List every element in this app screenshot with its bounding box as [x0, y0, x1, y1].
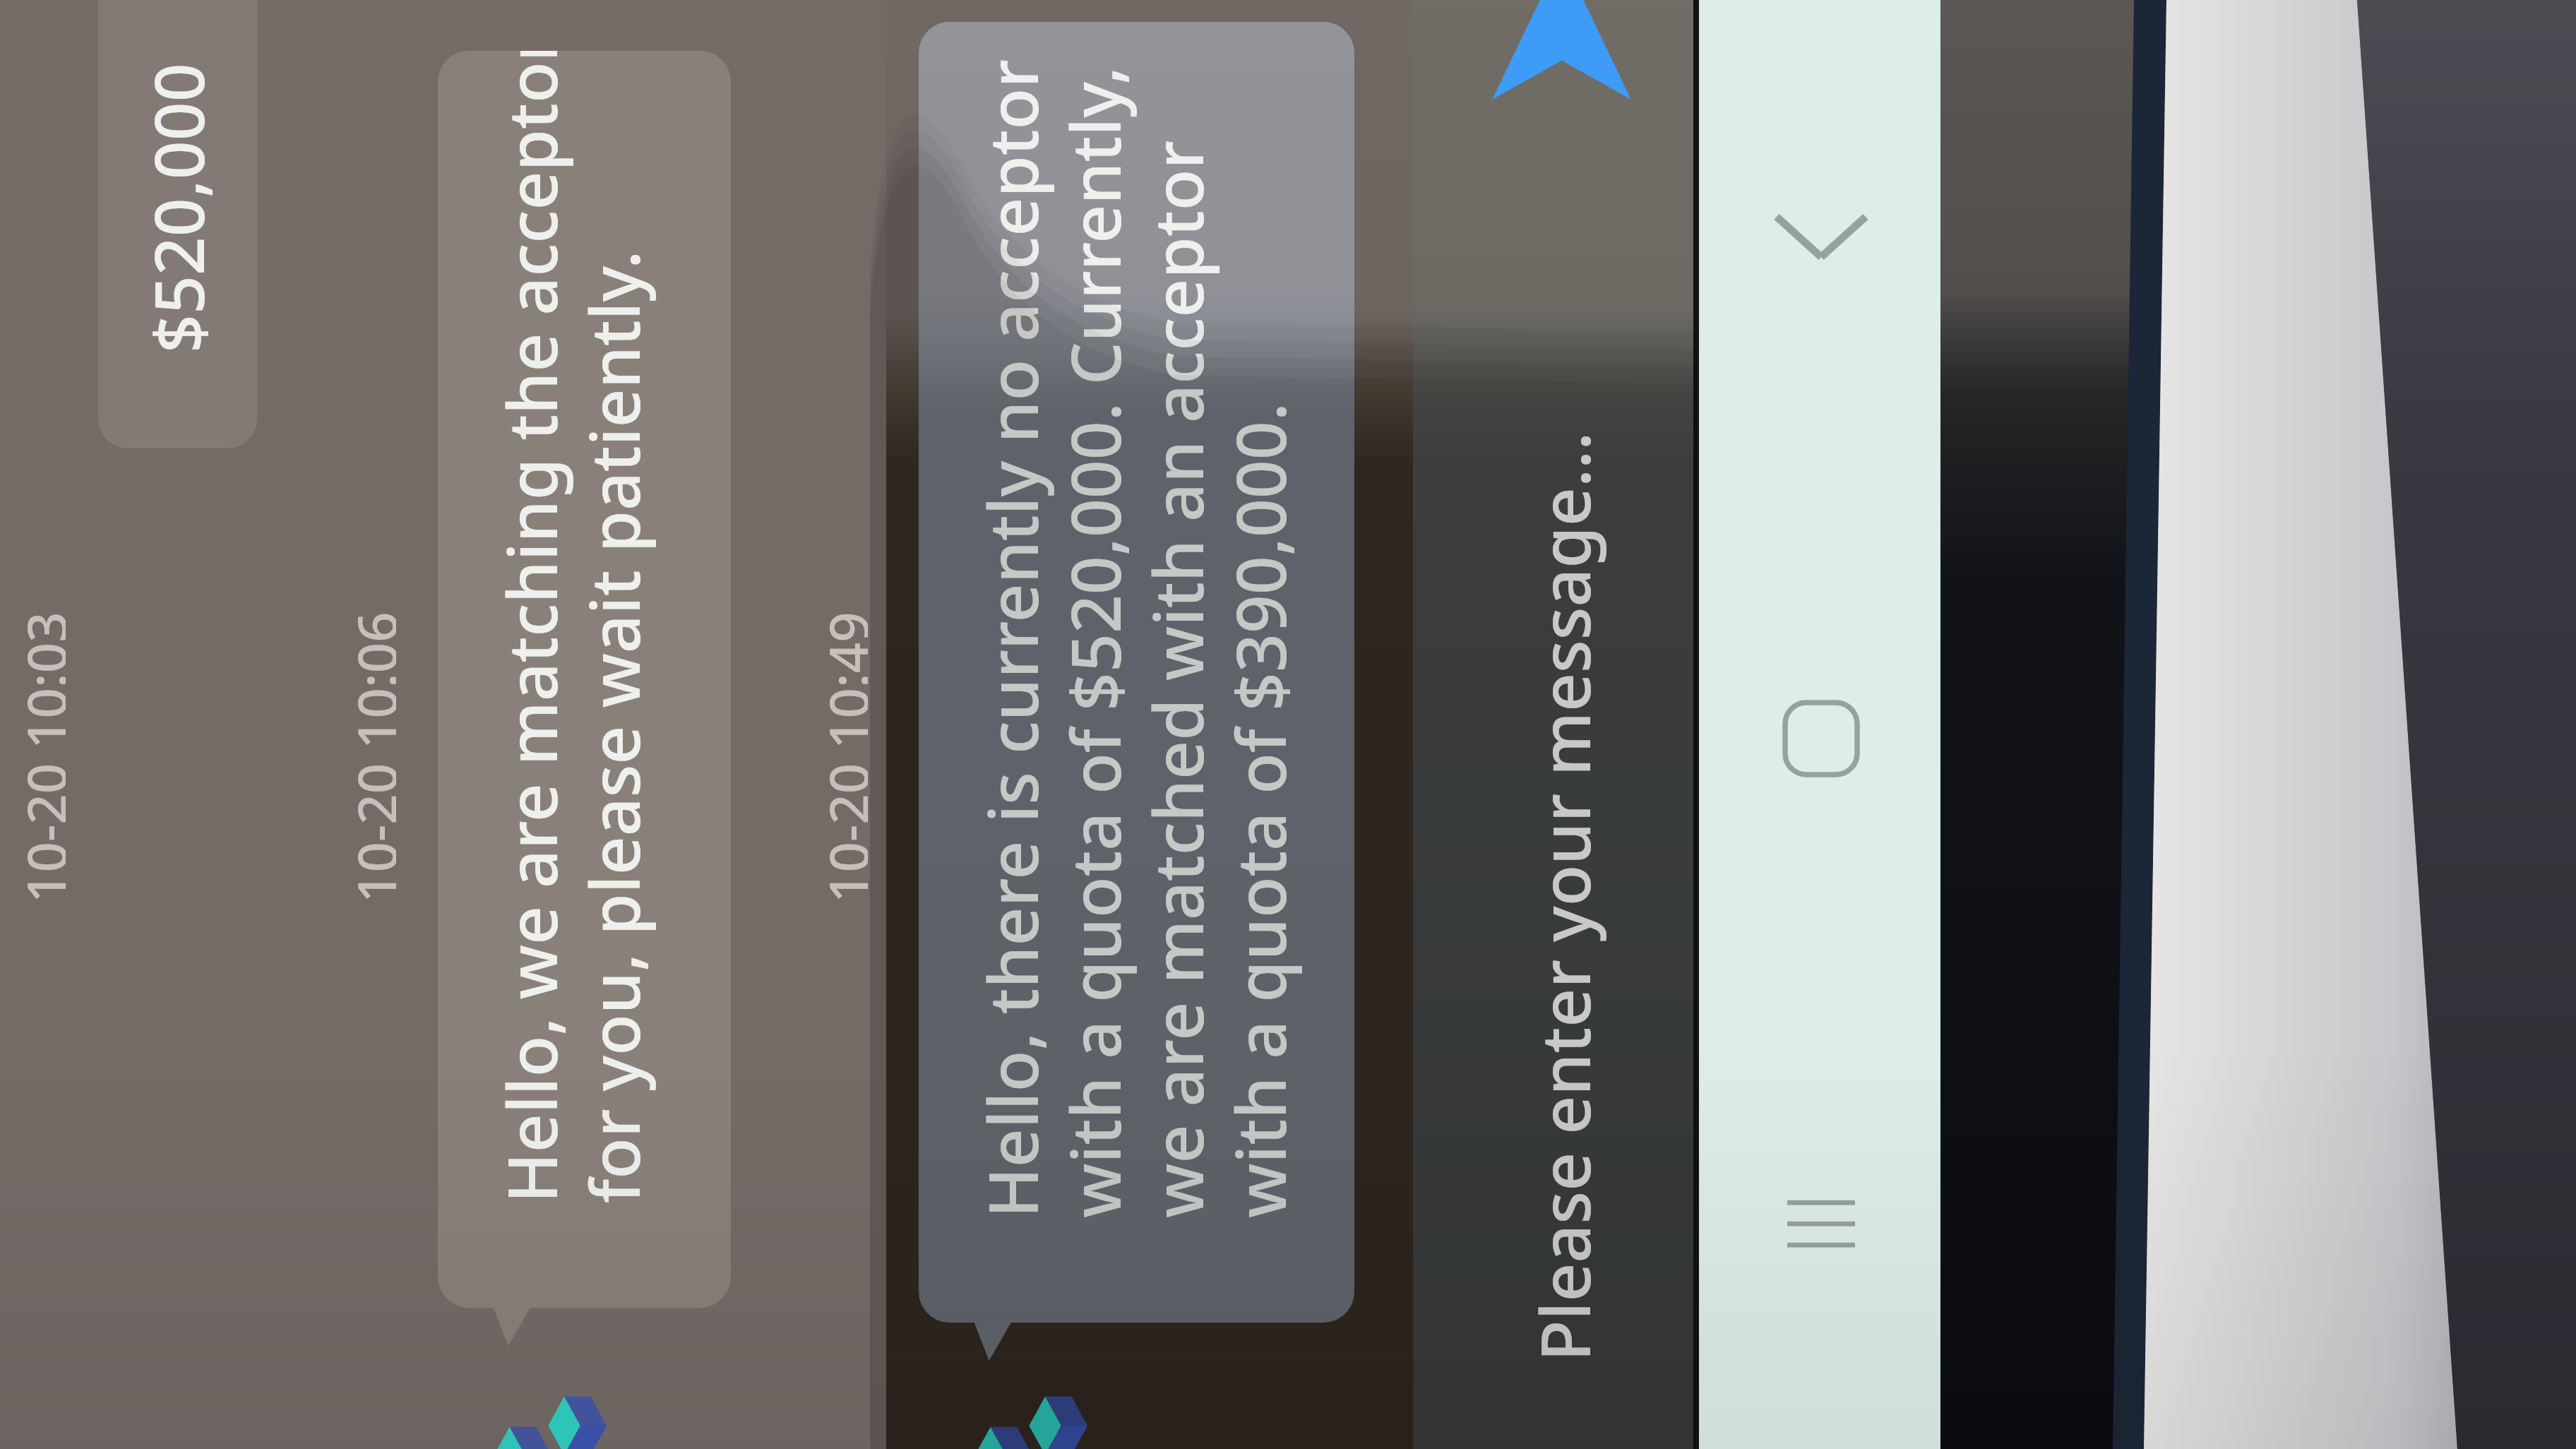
- staticText: 10-20 10:49: [811, 612, 868, 903]
- button[interactable]: Send message: [1489, 0, 1634, 100]
- staticText: 10-20 10:03: [9, 612, 66, 903]
- button[interactable]: Back: [1699, 114, 1943, 358]
- staticText: Hello, there is currently no acceptor wi…: [965, 59, 1306, 1218]
- staticText: Hello, we are matching the acceptor for …: [484, 51, 660, 1203]
- button[interactable]: Please enter your message...: [1413, 0, 1697, 1449]
- button[interactable]: Home: [1699, 616, 1943, 861]
- button[interactable]: Hello, we are matching the acceptor for …: [438, 51, 731, 1308]
- button[interactable]: Recent apps: [1699, 1102, 1943, 1346]
- button[interactable]: $520,000: [98, 0, 257, 448]
- staticText: $520,000: [131, 63, 224, 353]
- button[interactable]: Hello, there is currently no acceptor wi…: [919, 22, 1354, 1323]
- staticText: Please enter your message...: [1517, 431, 1610, 1361]
- staticText: 10-20 10:06: [340, 612, 396, 903]
